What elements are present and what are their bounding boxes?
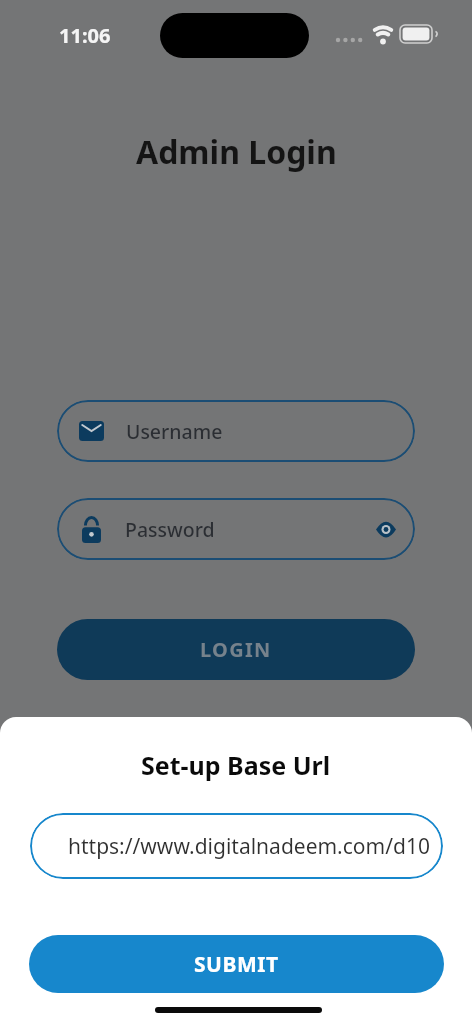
button[interactable]: SUBMIT: [29, 935, 444, 993]
staticText: LOGIN: [200, 636, 272, 663]
button[interactable]: Password: [57, 498, 415, 560]
button[interactable]: Username: [57, 400, 415, 462]
staticText: 11:06: [59, 22, 111, 49]
staticText: Password: [125, 516, 215, 543]
staticText: SUBMIT: [194, 950, 279, 979]
staticText: https://www.digitalnadeem.com/d10: [68, 832, 430, 861]
staticText: Set-up Base Url: [141, 748, 331, 782]
button[interactable]: LOGIN: [57, 619, 415, 680]
staticText: Admin Login: [136, 130, 337, 174]
staticText: Username: [126, 418, 223, 445]
button[interactable]: https://www.digitalnadeem.com/d10: [30, 813, 443, 879]
